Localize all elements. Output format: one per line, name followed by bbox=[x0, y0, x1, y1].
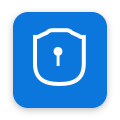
button[interactable]: Security bbox=[13, 12, 107, 108]
